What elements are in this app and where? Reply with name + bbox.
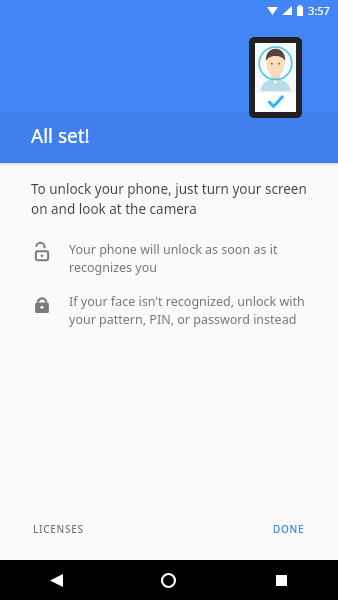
button[interactable]: Recent apps [225, 560, 338, 600]
staticText: DONE [273, 522, 305, 536]
other: Unlocked [31, 241, 53, 263]
button[interactable]: Home [112, 560, 225, 600]
button[interactable]: Back [0, 560, 112, 600]
staticText: LICENSES [33, 522, 84, 536]
other: Locked [31, 293, 53, 315]
button[interactable]: DONE [261, 512, 317, 546]
staticText: All set! [31, 123, 90, 149]
staticText: 3:57 [308, 3, 330, 18]
staticText: Your phone will unlock as soon as it rec… [69, 241, 312, 276]
button[interactable]: LICENSES [21, 512, 96, 546]
staticText: If your face isn't recognized, unlock wi… [69, 293, 312, 328]
staticText: To unlock your phone, just turn your scr… [31, 180, 312, 218]
